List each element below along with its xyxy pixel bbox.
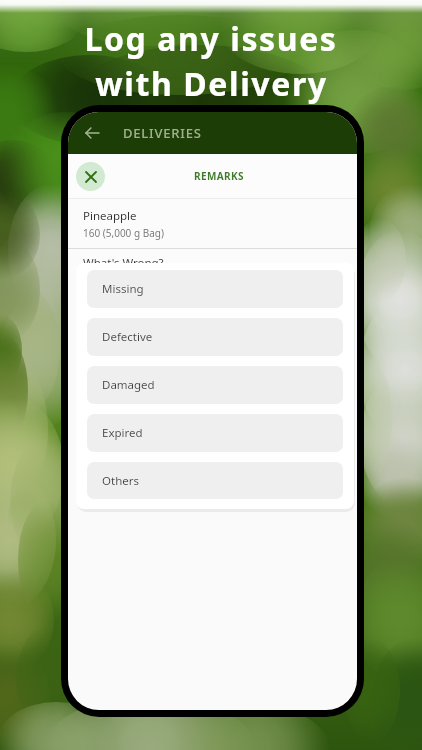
button[interactable]: Defective xyxy=(87,318,343,356)
button[interactable]: Close xyxy=(76,162,105,191)
staticText: Damaged xyxy=(102,377,155,393)
staticText: REMARKS xyxy=(194,169,245,183)
button[interactable]: Missing xyxy=(87,270,343,308)
staticText: 160 (5,000 g Bag) xyxy=(83,226,164,240)
staticText: What's Wrong? xyxy=(83,255,164,271)
staticText: Pineapple xyxy=(83,208,137,224)
staticText: Log any issues xyxy=(84,17,338,61)
staticText: with Delivery xyxy=(95,62,328,106)
staticText: Missing xyxy=(102,281,144,297)
button[interactable]: Back xyxy=(74,115,110,151)
button[interactable]: Expired xyxy=(87,414,343,452)
button[interactable]: Others xyxy=(87,462,343,499)
staticText: Expired xyxy=(102,425,143,441)
staticText: DELIVERIES xyxy=(123,124,202,142)
staticText: Defective xyxy=(102,329,153,345)
staticText: Others xyxy=(102,473,139,489)
button[interactable]: Damaged xyxy=(87,366,343,404)
